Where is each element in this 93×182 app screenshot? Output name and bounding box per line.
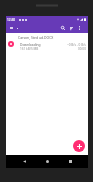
staticText: Downloading — [20, 42, 41, 46]
button[interactable]: Navigation menu — [7, 24, 15, 32]
staticText: 00:00 — [78, 47, 86, 51]
staticText: 12:30 — [7, 18, 16, 22]
button[interactable]: Search — [59, 24, 67, 32]
button[interactable]: Sort — [67, 24, 75, 32]
button[interactable]: Add download — [73, 140, 85, 152]
button[interactable]: Back — [17, 155, 31, 168]
button[interactable]: Recent apps — [63, 155, 77, 168]
button[interactable]: More options — [76, 25, 82, 31]
button[interactable]: Home — [40, 155, 54, 168]
button[interactable]: Carson, Sted ud.DOCX — [6, 33, 88, 57]
staticText: Carson, Sted ud.DOCX — [18, 35, 54, 40]
staticText: 161 kB/5 MB — [20, 47, 39, 51]
staticText: ~0 B/s - 0 B/s — [67, 43, 86, 47]
